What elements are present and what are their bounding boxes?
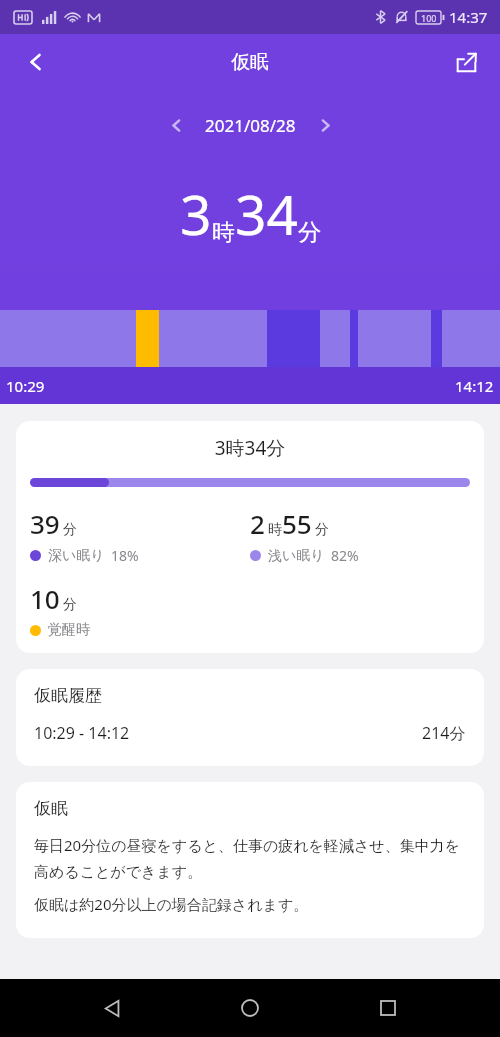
staticText: 10:29 - 14:12	[34, 722, 130, 744]
staticText: 18%	[111, 546, 139, 565]
staticText: 浅い眠り	[268, 547, 325, 565]
button[interactable]: Recent apps	[362, 982, 414, 1034]
staticText: 分	[315, 521, 329, 539]
staticText: 82%	[331, 546, 359, 565]
staticText: 214分	[422, 722, 466, 744]
button[interactable]: 3時34分	[16, 421, 484, 653]
staticText: 10	[30, 581, 60, 616]
staticText: 14:12	[455, 376, 494, 396]
staticText: 10:29	[6, 376, 45, 396]
staticText: 100	[421, 12, 437, 24]
staticText: 2	[250, 506, 265, 541]
button[interactable]: Share	[444, 40, 488, 84]
staticText: 分	[63, 596, 77, 614]
staticText: 仮眠	[231, 50, 269, 74]
staticText: 仮眠	[34, 798, 68, 819]
staticText: 分	[298, 218, 321, 247]
staticText: 分	[63, 521, 77, 539]
staticText: 時	[268, 521, 282, 539]
staticText: 毎日20分位の昼寝をすると、仕事の疲れを軽減させ、集中力を高めることができます。	[34, 835, 466, 882]
staticText: 3	[180, 176, 212, 251]
staticText: 55	[282, 506, 312, 541]
button[interactable]: Back	[14, 40, 58, 84]
staticText: 仮眠履歴	[34, 685, 102, 706]
button[interactable]: Home	[224, 982, 276, 1034]
staticText: 14:37	[449, 7, 488, 27]
staticText: 3時34分	[30, 435, 470, 461]
staticText: 時	[212, 218, 235, 247]
staticText: 覚醒時	[48, 621, 90, 639]
staticText: 39	[30, 506, 60, 541]
button[interactable]: 仮眠	[16, 782, 484, 938]
staticText: 34	[235, 176, 298, 251]
button[interactable]: Next day	[308, 108, 342, 142]
button[interactable]: Back	[86, 982, 138, 1034]
staticText: 仮眠は約20分以上の場合記録されます。	[34, 894, 309, 914]
staticText: 2021/08/28	[205, 114, 296, 137]
staticText: 深い眠り	[48, 547, 105, 565]
button[interactable]: 仮眠履歴	[16, 669, 484, 766]
button[interactable]: Previous day	[159, 108, 193, 142]
